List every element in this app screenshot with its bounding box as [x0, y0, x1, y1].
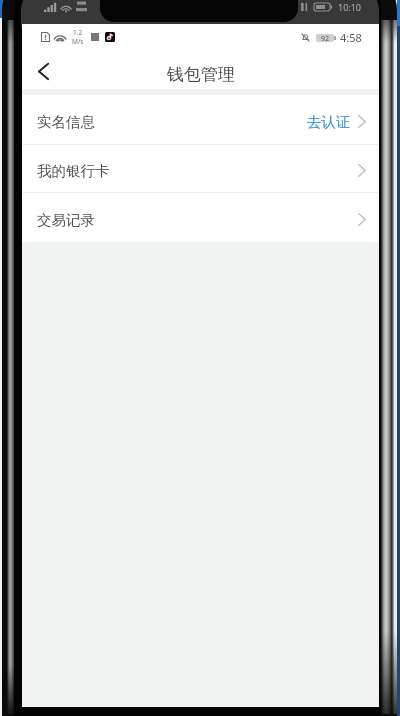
button[interactable]: 我的银行卡: [22, 145, 379, 192]
button[interactable]: 实名信息: [22, 95, 379, 144]
staticText: 92: [321, 34, 330, 42]
staticText: 4:58: [340, 30, 362, 45]
staticText: M/s: [72, 37, 84, 46]
button[interactable]: Back: [22, 50, 64, 89]
staticText: 去认证: [307, 113, 351, 131]
staticText: 钱包管理: [167, 64, 235, 85]
button[interactable]: 交易记录: [22, 193, 379, 242]
staticText: 10:10: [338, 1, 362, 13]
staticText: 我的银行卡: [37, 162, 110, 180]
staticText: 1.2: [73, 28, 83, 37]
staticText: 实名信息: [37, 113, 95, 131]
staticText: 交易记录: [37, 211, 95, 229]
